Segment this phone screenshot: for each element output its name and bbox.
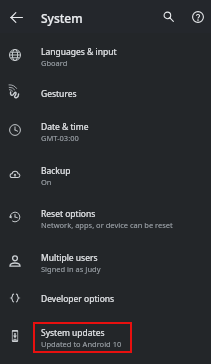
staticText: Updated to Android 10 [41, 339, 122, 349]
staticText: System updates [41, 327, 105, 339]
staticText: System [41, 10, 83, 26]
button[interactable]: Back [4, 5, 28, 29]
button[interactable]: Multiple users [0, 239, 211, 282]
staticText: Gboard [41, 58, 68, 68]
button[interactable]: Help [184, 3, 211, 30]
button[interactable]: System updates [0, 314, 211, 357]
button[interactable]: Languages & input [0, 33, 211, 76]
staticText: On [41, 177, 52, 187]
button[interactable]: Search [155, 3, 182, 30]
button[interactable]: Reset options [0, 195, 211, 238]
staticText: Signed in as Judy [41, 264, 101, 274]
staticText: Network, apps, or device can be reset [41, 220, 173, 230]
staticText: GMT-03:00 [41, 133, 79, 143]
staticText: Date & time [41, 121, 89, 133]
button[interactable]: Date & time [0, 108, 211, 151]
staticText: Languages & input [41, 46, 117, 58]
staticText: Backup [41, 165, 71, 177]
staticText: Reset options [41, 208, 96, 220]
button[interactable]: Developer options [0, 282, 211, 314]
button[interactable]: Gestures [0, 77, 211, 109]
staticText: Gestures [41, 88, 77, 100]
staticText: Developer options [41, 293, 115, 305]
staticText: Multiple users [41, 252, 98, 264]
button[interactable]: Backup [0, 152, 211, 195]
